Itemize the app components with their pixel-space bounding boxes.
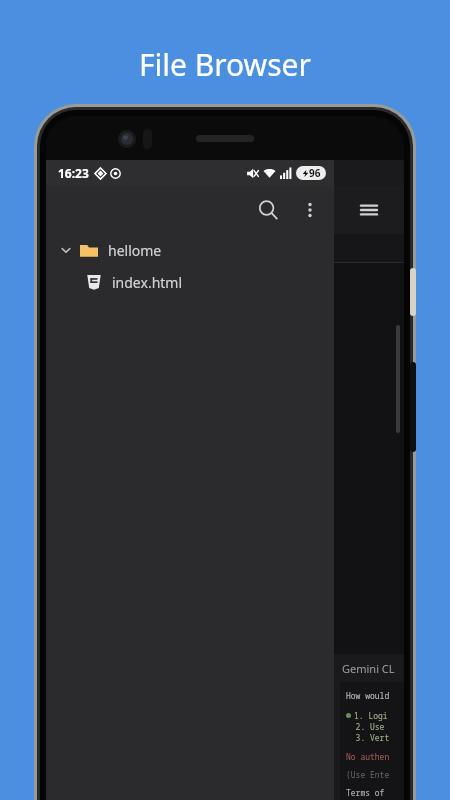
button[interactable]: Search: [246, 188, 290, 232]
staticText: How would: [346, 690, 390, 701]
staticText: (Use Ente: [346, 769, 390, 780]
button[interactable]: hellome: [46, 234, 334, 266]
staticText: Gemini CL: [342, 661, 395, 676]
staticText: index.html: [112, 273, 183, 292]
staticText: 2. Use: [346, 721, 385, 732]
staticText: Terms of: [346, 787, 385, 798]
staticText: 16:23: [58, 165, 89, 181]
staticText: hellome: [108, 241, 162, 260]
staticText: 3. Vert: [346, 732, 390, 743]
button[interactable]: More options: [290, 190, 330, 230]
button[interactable]: Menu: [334, 186, 404, 234]
staticText: File Browser: [139, 44, 311, 85]
button[interactable]: index.html: [46, 266, 334, 298]
staticText: No authen: [346, 751, 390, 762]
staticText: 96: [309, 166, 321, 180]
staticText: 1. Logi: [354, 710, 388, 721]
